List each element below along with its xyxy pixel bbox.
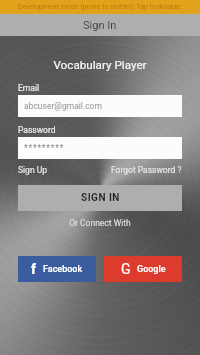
staticText: Sign In	[83, 19, 117, 32]
staticText: *********	[24, 143, 65, 153]
staticText: Development mode (prone to stutter). Tap…	[18, 3, 182, 11]
button[interactable]: *********	[18, 137, 182, 159]
staticText: Facebook	[43, 264, 83, 275]
button[interactable]: SIGN IN	[18, 185, 182, 211]
staticText: Or Connect With	[18, 218, 182, 228]
button[interactable]: abcuser@gmail.com	[18, 95, 182, 117]
button[interactable]: G	[104, 256, 182, 282]
button[interactable]: f	[18, 256, 96, 282]
staticText: abcuser@gmail.com	[24, 101, 102, 111]
button[interactable]: Sign Up	[18, 165, 47, 175]
staticText: Vocabulary Player	[0, 58, 200, 72]
button[interactable]: Development mode (prone to stutter). Tap…	[0, 0, 200, 14]
button[interactable]: Forgot Password ?	[111, 165, 182, 175]
staticText: Email	[18, 83, 40, 93]
staticText: SIGN IN	[81, 192, 120, 204]
staticText: f	[31, 261, 37, 277]
staticText: Google	[137, 264, 166, 275]
staticText: G	[121, 261, 131, 277]
staticText: Password	[18, 125, 56, 135]
